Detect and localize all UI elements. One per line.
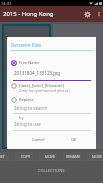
button[interactable]: Free Name	[11, 59, 40, 66]
staticText: MORE	[92, 154, 103, 159]
staticText: (Only for synchronized photos)	[19, 88, 70, 93]
button[interactable]	[53, 24, 103, 149]
button[interactable]: OK	[59, 134, 88, 145]
button[interactable]: Replace	[11, 96, 34, 103]
staticText: SET	[0, 154, 5, 159]
button[interactable]: RENAME	[62, 152, 85, 161]
button[interactable]: Cancel	[24, 134, 53, 145]
button[interactable]: More options	[94, 6, 103, 22]
staticText: String to search	[14, 105, 48, 111]
button[interactable]: COLLECTIONS	[0, 163, 103, 183]
staticText: COLLECTIONS	[38, 168, 65, 173]
button[interactable]: MOVE	[38, 152, 61, 161]
button[interactable]	[4, 26, 49, 147]
staticText: 20131804_133125.jpg	[14, 70, 60, 76]
staticText: OK	[71, 137, 77, 142]
button[interactable]: COPY	[14, 152, 37, 161]
staticText: Cancel	[32, 137, 45, 142]
staticText: String to use	[14, 121, 41, 127]
staticText: [date]_[time]_[filename]	[19, 83, 64, 88]
button[interactable]: SET	[0, 152, 13, 161]
staticText: MOVE	[45, 154, 55, 159]
staticText: 14:37	[1, 1, 12, 6]
staticText: 2015 - Hong Kong	[3, 10, 54, 18]
staticText: Rename files	[11, 42, 42, 49]
staticText: by	[19, 115, 24, 120]
button[interactable]: MORE	[86, 152, 103, 161]
button[interactable]: Settings	[80, 6, 94, 22]
staticText: Free Name	[19, 60, 40, 65]
button[interactable]: [date]_[time]_[filename]	[11, 82, 64, 89]
staticText: RENAME	[66, 154, 81, 159]
staticText: Replace	[19, 97, 34, 102]
staticText: COPY	[21, 154, 30, 159]
